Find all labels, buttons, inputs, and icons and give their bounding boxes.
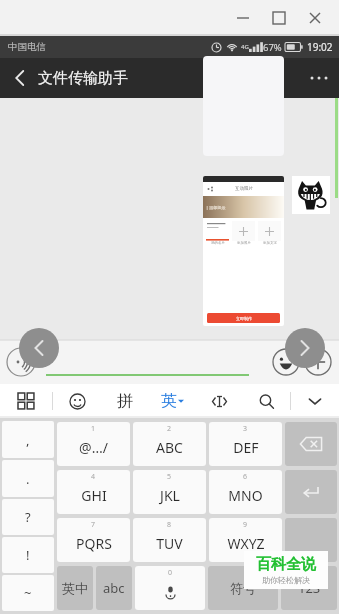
button[interactable]: abc <box>96 566 132 610</box>
staticText: 123 <box>298 579 321 597</box>
staticText: 4G <box>241 43 249 51</box>
button[interactable]: Emoji <box>270 346 302 378</box>
button[interactable]: 7 <box>57 518 130 562</box>
staticText: 百科全说 <box>256 555 316 574</box>
staticText: 67% <box>263 41 282 54</box>
button[interactable]: Enter <box>285 518 337 562</box>
button[interactable]: Back <box>19 328 59 368</box>
staticText: 2 <box>167 424 172 434</box>
button[interactable]: 百科全说 <box>244 551 328 589</box>
staticText: 英中 <box>62 580 88 596</box>
staticText: 添加照片 <box>237 241 251 245</box>
staticText: 5 <box>167 472 172 482</box>
staticText: @…/ <box>79 438 108 457</box>
button[interactable]: Search <box>243 384 290 418</box>
staticText: 我的名片 <box>211 241 225 245</box>
staticText: . <box>26 470 30 488</box>
staticText: ABC <box>156 438 183 457</box>
button[interactable]: ? <box>2 499 54 535</box>
button[interactable] <box>203 56 284 156</box>
button[interactable]: ! <box>2 537 54 573</box>
staticText: 添加文字 <box>263 241 277 245</box>
staticText: 互动照片 <box>235 186 253 192</box>
button[interactable]: 123 <box>281 566 337 610</box>
staticText: WXYZ <box>227 534 265 553</box>
button[interactable]: Minimize <box>225 3 261 33</box>
button[interactable]: 1 <box>57 422 130 466</box>
button[interactable]: Back <box>0 59 38 97</box>
button[interactable]: Hide keyboard <box>291 384 339 418</box>
button[interactable]: 拼 <box>101 384 149 418</box>
button[interactable]: 4 <box>57 470 130 514</box>
staticText: 19:02 <box>307 40 333 54</box>
staticText: , <box>26 431 30 449</box>
button[interactable]: Cat sticker <box>292 176 330 214</box>
button[interactable]: 2 <box>133 422 206 466</box>
button[interactable]: Enter <box>285 470 337 514</box>
button[interactable]: Maximize <box>261 3 297 33</box>
button[interactable]: Close <box>297 3 333 33</box>
staticText: 拼 <box>117 391 133 411</box>
button[interactable]: 英中 <box>57 566 93 610</box>
staticText: 文件传输助手 <box>38 69 128 88</box>
button[interactable]: 9 <box>209 518 282 562</box>
staticText: 7 <box>91 520 96 530</box>
staticText: 立即制作 <box>236 316 252 321</box>
button[interactable]: 8 <box>133 518 206 562</box>
button[interactable]: Emoji keyboard <box>53 384 101 418</box>
button[interactable]: More options <box>299 58 339 98</box>
staticText: TUV <box>156 534 183 553</box>
button[interactable]: 符号 <box>208 566 278 610</box>
staticText: 8 <box>167 520 172 530</box>
button[interactable]: Cursor control <box>196 384 243 418</box>
button[interactable] <box>44 347 251 377</box>
staticText: 4 <box>91 472 96 482</box>
button[interactable]: 3 <box>209 422 282 466</box>
button[interactable]: Voice input <box>135 566 205 610</box>
staticText: abc <box>103 579 125 597</box>
staticText: GHI <box>81 486 107 505</box>
button[interactable]: 6 <box>209 470 282 514</box>
button[interactable]: 英 <box>149 384 196 418</box>
staticText: 0 <box>168 568 173 578</box>
staticText: 6 <box>243 472 248 482</box>
staticText: 英 <box>161 391 177 411</box>
staticText: ? <box>25 508 31 526</box>
button[interactable]: . <box>2 460 54 497</box>
staticText: JKL <box>160 486 180 505</box>
button[interactable]: 互动照片 <box>203 176 284 326</box>
button[interactable]: , <box>2 421 54 458</box>
staticText: ! <box>26 546 30 564</box>
staticText: ~ <box>24 584 32 602</box>
staticText: 符号 <box>230 580 256 596</box>
button[interactable]: Backspace <box>285 422 337 466</box>
staticText: 助你轻松解决 <box>262 575 310 585</box>
button[interactable]: Forward <box>285 328 325 368</box>
staticText: DEF <box>233 438 259 457</box>
staticText: 9 <box>243 520 248 530</box>
staticText: | 温馨提示 <box>206 205 226 210</box>
button[interactable]: 5 <box>133 470 206 514</box>
button[interactable]: ~ <box>2 575 54 611</box>
staticText: MNO <box>228 486 263 505</box>
staticText: 3 <box>243 424 248 434</box>
button[interactable]: Voice input <box>6 347 36 377</box>
button[interactable]: More functions <box>302 346 334 378</box>
staticText: 1 <box>91 424 96 434</box>
staticText: 中国电信 <box>8 41 46 53</box>
button[interactable]: Keyboard layouts <box>0 384 52 418</box>
staticText: PQRS <box>76 534 112 553</box>
